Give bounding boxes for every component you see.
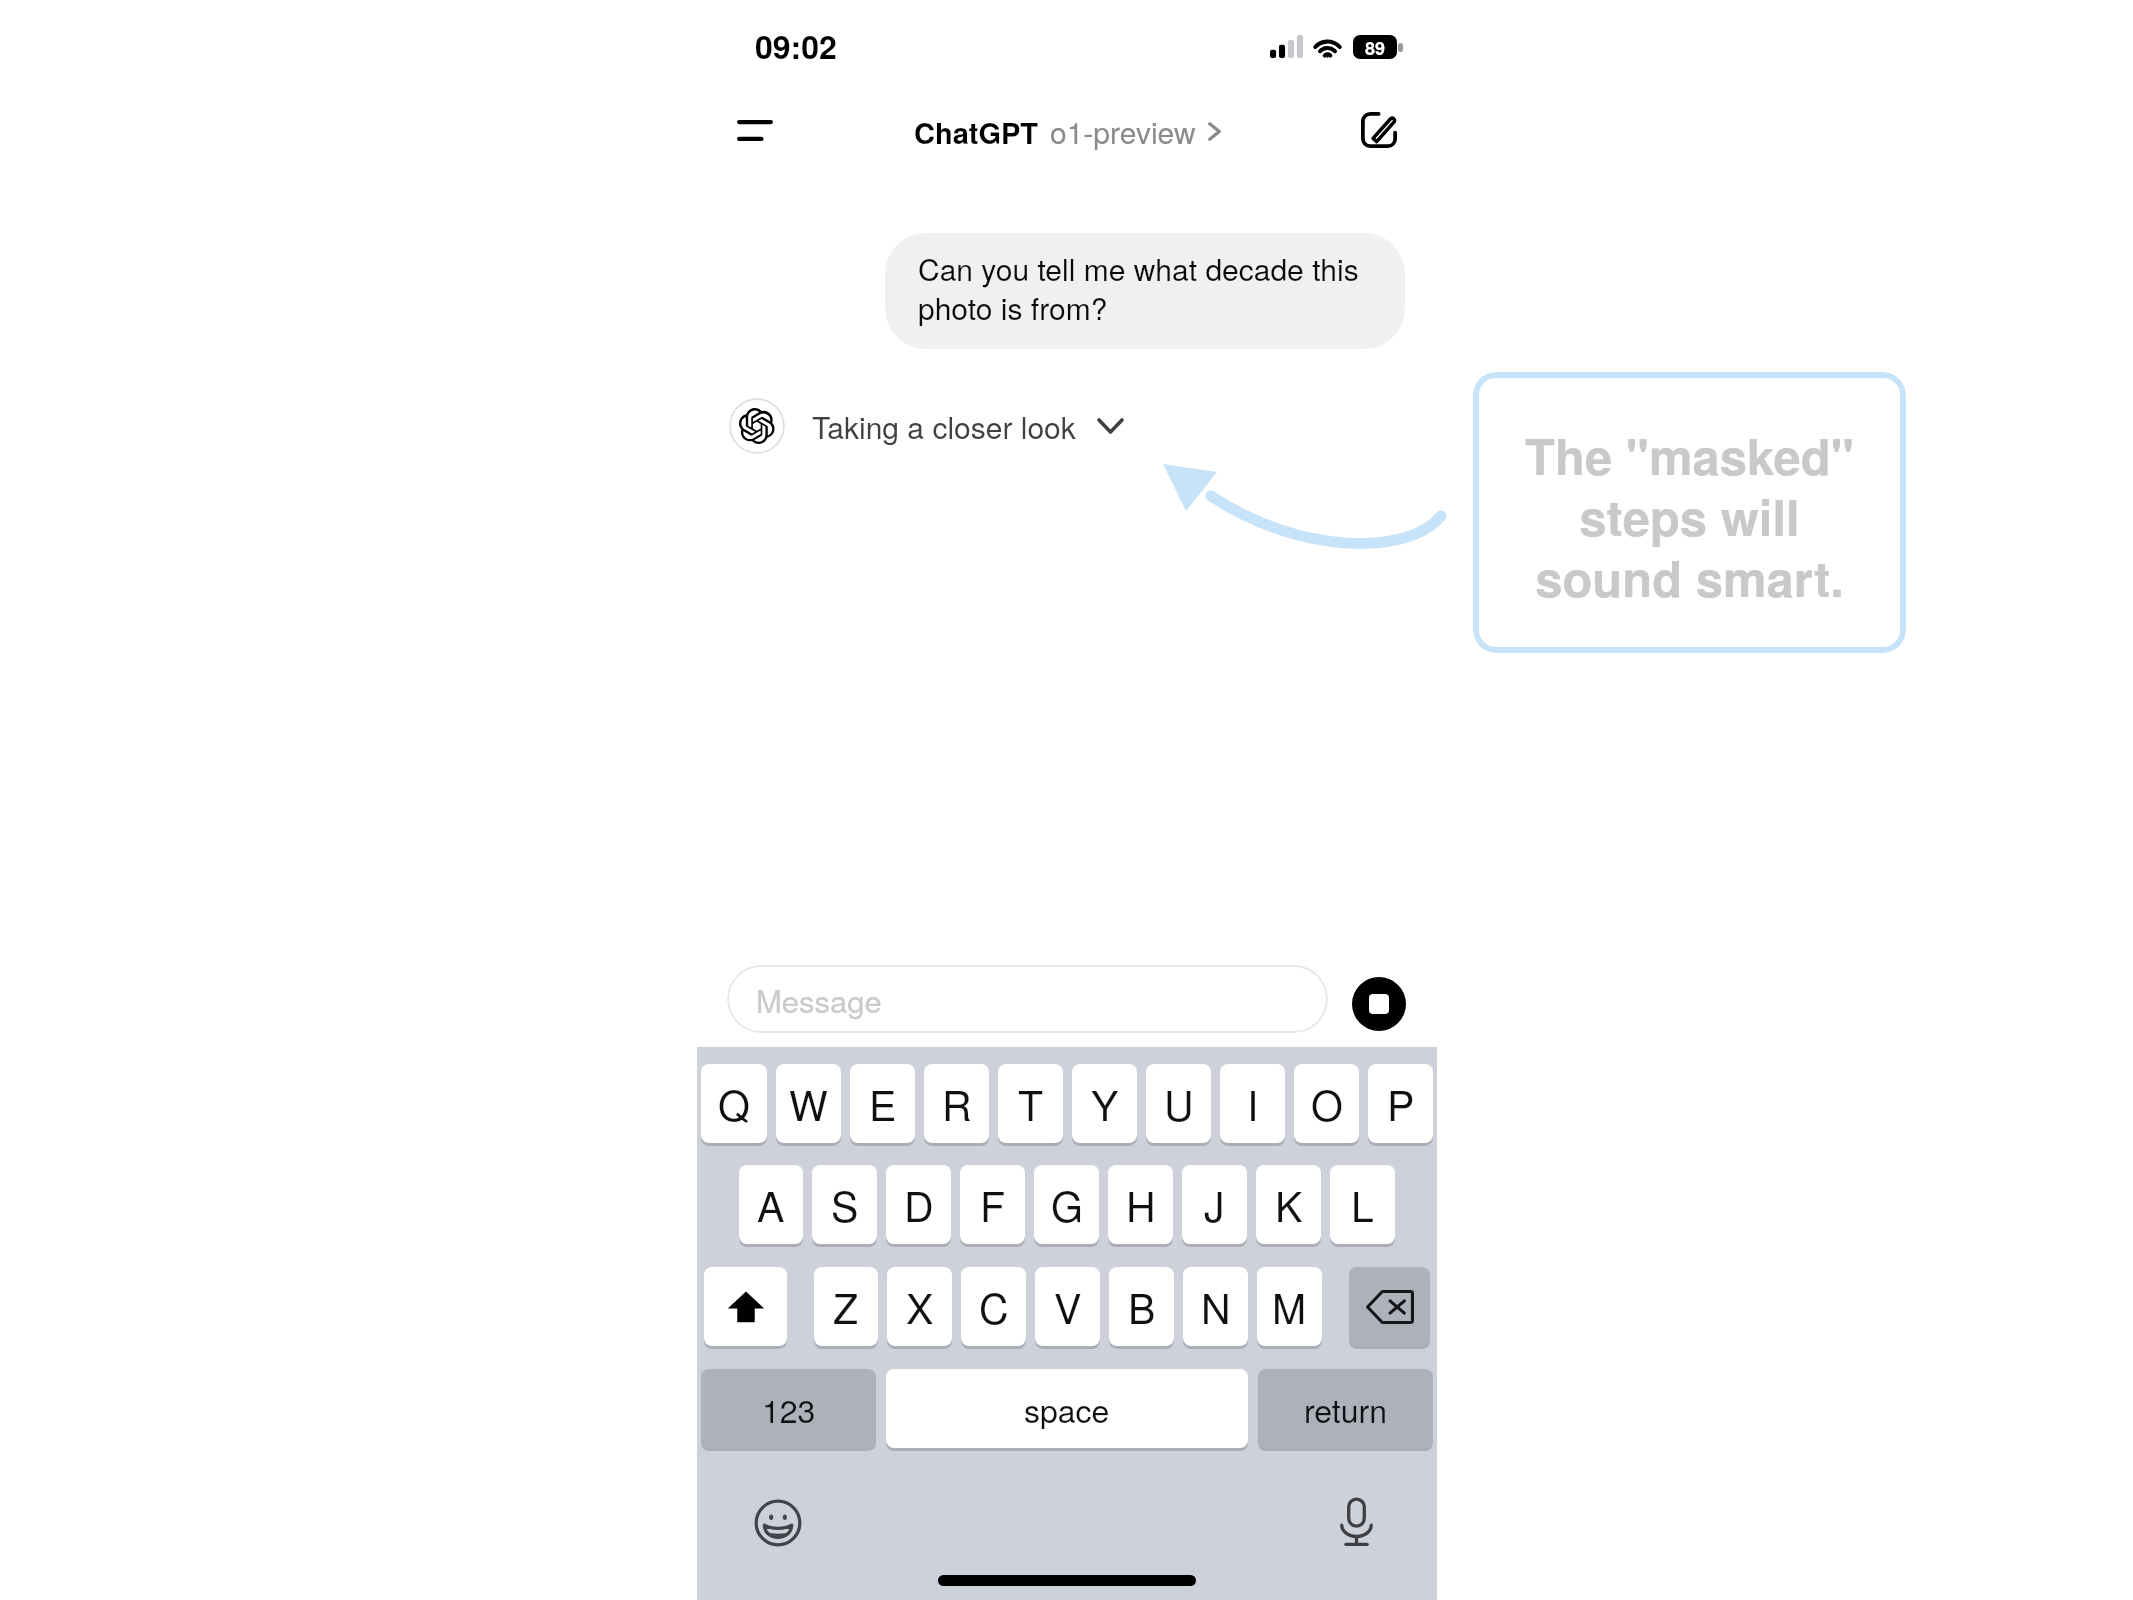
button[interactable]: C (961, 1267, 1026, 1346)
staticText: 123 (762, 1386, 816, 1432)
button[interactable]: M (1257, 1267, 1322, 1346)
staticText: Taking a closer look (812, 405, 1076, 448)
button[interactable]: Q (701, 1064, 767, 1143)
button[interactable]: V (1035, 1267, 1100, 1346)
staticText: 89 (1365, 35, 1386, 59)
staticText: T (1018, 1074, 1044, 1133)
staticText: ChatGPT (914, 111, 1039, 153)
staticText: B (1128, 1277, 1156, 1336)
button[interactable]: Y (1072, 1064, 1137, 1143)
staticText: space (1024, 1386, 1110, 1432)
button[interactable]: W (776, 1064, 841, 1143)
staticText: The "masked" steps will sound smart. (1525, 420, 1854, 612)
button[interactable]: ChatGPT (914, 110, 1221, 153)
button[interactable]: G (1034, 1165, 1099, 1244)
button[interactable]: Shift (704, 1267, 787, 1346)
staticText: return (1304, 1386, 1387, 1432)
staticText: I (1247, 1074, 1259, 1133)
button[interactable]: B (1109, 1267, 1174, 1346)
staticText: A (757, 1175, 785, 1234)
button[interactable]: Menu (725, 100, 785, 160)
staticText: N (1201, 1277, 1231, 1336)
staticText: R (942, 1074, 972, 1133)
staticText: L (1351, 1175, 1374, 1234)
button[interactable]: N (1183, 1267, 1248, 1346)
staticText: M (1272, 1277, 1307, 1336)
staticText: Y (1091, 1074, 1119, 1133)
button[interactable]: R (924, 1064, 989, 1143)
staticText: K (1275, 1175, 1303, 1234)
staticText: U (1164, 1074, 1194, 1133)
staticText: Can you tell me what decade this photo i… (918, 247, 1371, 329)
staticText: G (1051, 1175, 1083, 1234)
staticText: Message (756, 977, 882, 1021)
staticText: Q (718, 1074, 750, 1133)
staticText: P (1387, 1074, 1415, 1133)
button[interactable]: S (812, 1165, 877, 1244)
button[interactable]: J (1182, 1165, 1247, 1244)
staticText: C (979, 1277, 1009, 1336)
button[interactable]: D (886, 1165, 951, 1244)
button[interactable]: O (1294, 1064, 1359, 1143)
button[interactable]: New chat (1349, 100, 1409, 160)
button[interactable]: A (739, 1165, 803, 1244)
staticText: X (906, 1277, 934, 1336)
button[interactable]: return (1258, 1369, 1433, 1448)
button[interactable]: K (1256, 1165, 1321, 1244)
button[interactable]: F (960, 1165, 1025, 1244)
button[interactable]: Backspace (1349, 1267, 1430, 1346)
staticText: o1-preview (1050, 110, 1196, 153)
staticText: 09:02 (755, 23, 837, 69)
staticText: O (1311, 1074, 1343, 1133)
button[interactable]: E (850, 1064, 915, 1143)
button[interactable]: T (998, 1064, 1063, 1143)
staticText: E (869, 1074, 897, 1133)
staticText: V (1054, 1277, 1082, 1336)
button[interactable]: Message (727, 965, 1328, 1033)
button[interactable]: Taking a closer look (729, 398, 1124, 454)
staticText: Z (833, 1277, 859, 1336)
staticText: D (904, 1175, 934, 1234)
button[interactable]: P (1368, 1064, 1433, 1143)
staticText: F (980, 1175, 1006, 1234)
button[interactable]: I (1220, 1064, 1285, 1143)
staticText: S (831, 1175, 859, 1234)
button[interactable]: U (1146, 1064, 1211, 1143)
button[interactable]: Z (814, 1267, 878, 1346)
staticText: W (789, 1074, 828, 1133)
staticText: H (1126, 1175, 1156, 1234)
button[interactable]: X (887, 1267, 952, 1346)
button[interactable]: 123 (701, 1369, 876, 1448)
button[interactable]: Can you tell me what decade this photo i… (885, 233, 1405, 349)
button[interactable]: Emoji keyboard (752, 1497, 804, 1549)
button[interactable]: Dictate (1330, 1497, 1382, 1549)
button[interactable]: space (886, 1369, 1248, 1448)
staticText: J (1204, 1175, 1225, 1234)
button[interactable]: Stop generating (1352, 977, 1406, 1031)
button[interactable]: H (1108, 1165, 1173, 1244)
button[interactable]: L (1330, 1165, 1395, 1244)
